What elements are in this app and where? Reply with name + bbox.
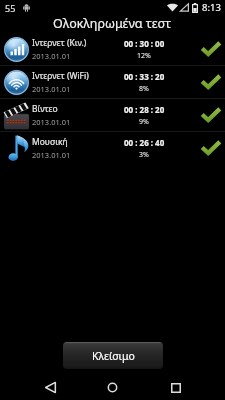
staticText: 00 : 28 : 20: [124, 104, 165, 115]
staticText: 8%: [139, 84, 149, 94]
staticText: 2013.01.01: [32, 51, 71, 61]
staticText: Ιντερνετ (WiFi): [32, 70, 89, 82]
staticText: Βίντεο: [32, 103, 58, 115]
staticText: 9%: [139, 117, 149, 127]
staticText: 55: [5, 2, 16, 14]
staticText: 00 : 33 : 20: [124, 71, 165, 82]
button[interactable]: Κλείσιμο: [63, 342, 163, 369]
button[interactable]: Recents: [143, 375, 225, 400]
staticText: Κλείσιμο: [92, 349, 135, 363]
button[interactable]: Βίντεο: [0, 99, 225, 131]
button[interactable]: Μουσική: [0, 132, 225, 164]
staticText: Μουσική: [32, 136, 68, 148]
staticText: 2013.01.01: [32, 84, 71, 94]
staticText: 3%: [139, 150, 149, 160]
staticText: 8:13: [202, 1, 221, 14]
staticText: Ολοκληρωμένα τεστ: [53, 15, 172, 32]
staticText: 00 : 26 : 40: [124, 137, 165, 148]
button[interactable]: Back: [0, 375, 81, 400]
button[interactable]: Home: [81, 375, 143, 400]
staticText: 2013.01.01: [32, 117, 71, 127]
button[interactable]: Ιντερνετ (WiFi): [0, 66, 225, 98]
button[interactable]: Ιντερνετ (Κιν.): [0, 33, 225, 65]
staticText: Ιντερνετ (Κιν.): [32, 37, 87, 49]
staticText: 00 : 30 : 00: [124, 38, 165, 49]
staticText: 12%: [137, 51, 151, 61]
staticText: 2013.01.01: [32, 150, 71, 160]
